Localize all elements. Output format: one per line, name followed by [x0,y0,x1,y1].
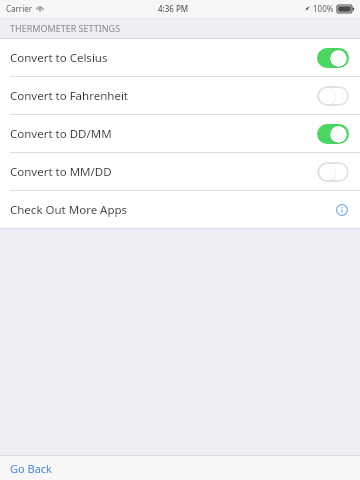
button[interactable]: Convert to Fahrenheit [0,77,360,114]
button[interactable] [317,48,349,68]
button[interactable]: Convert to Celsius [0,39,360,76]
staticText: 4:36 PM [158,3,189,14]
button[interactable] [317,86,349,106]
button[interactable]: Go Back [0,456,360,480]
staticText: Convert to Fahrenheit [10,88,129,104]
staticText: Convert to MM/DD [10,164,112,180]
staticText: Check Out More Apps [10,202,128,218]
button[interactable]: More information [334,202,350,218]
button[interactable]: Convert to MM/DD [0,153,360,190]
staticText: Carrier [6,3,33,14]
staticText: Go Back [10,461,52,476]
button[interactable]: Convert to DD/MM [0,115,360,152]
staticText: Convert to DD/MM [10,126,112,142]
staticText: THERMOMETER SETTINGS [10,22,121,34]
staticText: 100% [313,3,334,14]
button[interactable] [317,124,349,144]
staticText: Convert to Celsius [10,50,108,66]
button[interactable] [317,162,349,182]
button[interactable]: Check Out More Apps [0,191,360,228]
